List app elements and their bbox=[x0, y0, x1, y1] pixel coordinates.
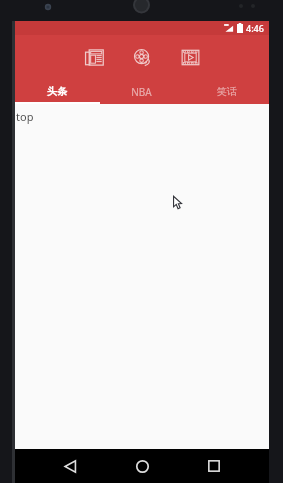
button[interactable]: Video bbox=[177, 44, 203, 70]
button[interactable]: Back bbox=[53, 449, 87, 483]
button[interactable]: 头条 bbox=[15, 79, 99, 104]
staticText: NBA bbox=[131, 85, 152, 99]
button[interactable]: News bbox=[81, 44, 107, 70]
button[interactable]: 笑话 bbox=[184, 79, 269, 104]
button[interactable]: NBA bbox=[99, 79, 184, 104]
button[interactable]: Recent apps bbox=[197, 449, 231, 483]
staticText: 4:46 bbox=[246, 22, 264, 34]
button[interactable]: Movies bbox=[129, 44, 155, 70]
staticText: top bbox=[16, 109, 34, 124]
staticText: 笑话 bbox=[217, 85, 237, 98]
staticText: 头条 bbox=[47, 85, 67, 98]
button[interactable]: Home bbox=[125, 449, 159, 483]
